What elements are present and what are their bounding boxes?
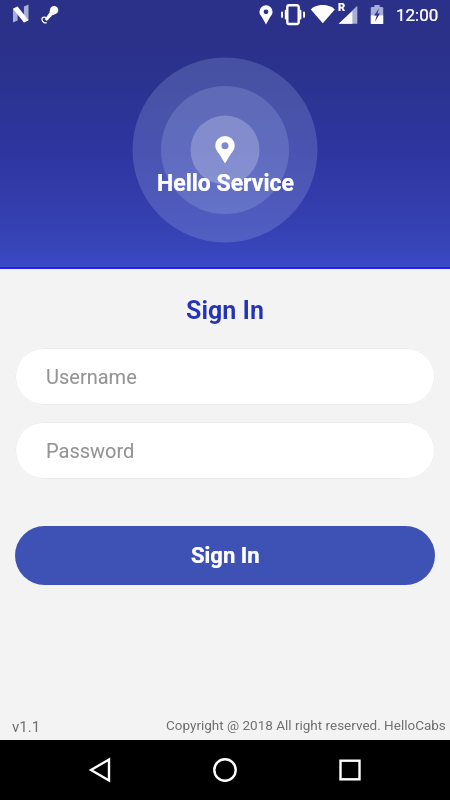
button[interactable]: Username (15, 348, 435, 405)
staticText: R (338, 1, 346, 14)
button[interactable]: Back (76, 740, 124, 800)
staticText: Copyright @ 2018 All right reserved. Hel… (166, 717, 446, 733)
button[interactable]: Password (15, 422, 435, 479)
staticText: Sign In (0, 296, 450, 325)
button[interactable]: Recent apps (326, 740, 374, 800)
staticText: Username (46, 365, 137, 388)
staticText: Sign In (191, 543, 260, 569)
staticText: 12:00 (396, 5, 439, 25)
staticText: Password (46, 439, 135, 462)
button[interactable]: Sign In (15, 526, 435, 585)
button[interactable]: Home (201, 740, 249, 800)
staticText: v1.1 (12, 718, 41, 736)
staticText: Hello Service (157, 170, 294, 197)
